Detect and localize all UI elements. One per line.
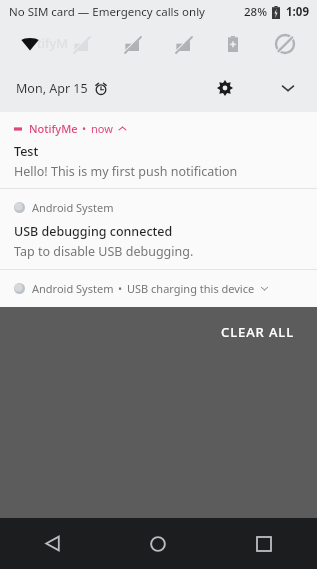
staticText: USB debugging connected: [14, 223, 173, 240]
staticText: Mon, Apr 15: [16, 80, 88, 97]
button[interactable]: Settings: [208, 71, 242, 105]
staticText: 1:09: [286, 4, 309, 20]
staticText: •: [118, 281, 123, 296]
staticText: Tap to disable USB debugging.: [14, 243, 194, 260]
button[interactable]: NotifyMe: [0, 112, 317, 188]
button[interactable]: CLEAR ALL: [211, 315, 305, 349]
button[interactable]: Expand: [271, 71, 305, 105]
staticText: No SIM card — Emergency calls only: [9, 4, 205, 20]
button[interactable]: Android System: [0, 189, 317, 269]
staticText: CLEAR ALL: [221, 323, 295, 341]
button[interactable]: Android System: [0, 270, 317, 307]
staticText: •: [82, 121, 87, 136]
button[interactable]: Mobile data off: [170, 31, 196, 57]
staticText: tifyM: [37, 34, 68, 52]
button[interactable]: Back: [0, 518, 105, 569]
staticText: Test: [14, 143, 39, 160]
staticText: Android System: [32, 200, 114, 215]
button[interactable]: Mobile data off: [119, 31, 145, 57]
button[interactable]: Do not disturb: [272, 31, 298, 57]
staticText: NotifyMe: [29, 121, 78, 136]
staticText: Android System: [32, 281, 114, 296]
button[interactable]: Recent apps: [211, 518, 317, 569]
staticText: now: [91, 121, 113, 136]
button[interactable]: Home: [105, 518, 211, 569]
button[interactable]: Mobile data: [68, 31, 94, 57]
staticText: Hello! This is my first push notificatio…: [14, 163, 238, 180]
staticText: 28%: [244, 4, 267, 20]
staticText: USB charging this device: [127, 281, 255, 296]
button[interactable]: Battery saver: [220, 31, 246, 57]
button[interactable]: Wi-Fi: [17, 31, 43, 57]
